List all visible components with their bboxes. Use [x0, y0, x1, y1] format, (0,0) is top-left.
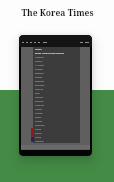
button[interactable]: Index Korea Times Special — [35, 51, 78, 55]
staticText: Columns — [35, 104, 45, 107]
button[interactable]: Editorial — [35, 99, 78, 103]
staticText: N. Korea — [35, 64, 44, 67]
button[interactable]: Foreign — [35, 67, 78, 71]
staticText: Economy — [35, 84, 45, 87]
staticText: Sports — [35, 132, 42, 135]
button[interactable]: Movies — [35, 119, 78, 123]
button[interactable]: Tech — [35, 91, 78, 95]
staticText: Index Korea Times Special — [35, 52, 64, 55]
button[interactable]: Opinion — [35, 95, 78, 99]
button[interactable]: Books — [35, 115, 78, 119]
button[interactable]: Economy — [35, 83, 78, 87]
button[interactable]: The Korea Times — [0, 0, 114, 26]
button[interactable]: Lifestyle — [35, 139, 78, 143]
staticText: The Korea Times — [21, 7, 94, 19]
staticText: World — [35, 136, 42, 139]
button[interactable]: Finance — [35, 87, 78, 91]
staticText: National — [35, 56, 44, 59]
staticText: Defense — [35, 72, 44, 75]
staticText: Home — [35, 48, 42, 51]
button[interactable]: N. Korea — [35, 63, 78, 67]
button[interactable]: Defense — [35, 71, 78, 75]
staticText: Society — [35, 76, 43, 79]
button[interactable]: Columns — [35, 103, 78, 107]
staticText: Entertain — [35, 124, 45, 127]
staticText: Lifestyle — [35, 140, 44, 143]
staticText: Opinion — [35, 96, 44, 99]
button[interactable]: Culture — [35, 111, 78, 115]
staticText: Culture — [35, 112, 43, 115]
staticText: Books — [35, 116, 42, 119]
button[interactable]: Politics — [35, 59, 78, 63]
button[interactable]: National — [35, 55, 78, 59]
staticText: Letters — [35, 108, 43, 111]
staticText: Editorial — [35, 100, 44, 103]
staticText: Foreign — [35, 68, 43, 71]
button[interactable]: Society — [35, 75, 78, 79]
staticText: Politics — [35, 60, 43, 63]
button[interactable]: Letters — [35, 107, 78, 111]
button[interactable]: Business — [35, 79, 78, 83]
staticText: K-pop — [35, 128, 42, 131]
staticText: Finance — [35, 88, 43, 91]
button[interactable]: Entertain — [35, 123, 78, 127]
button[interactable]: K-pop — [35, 127, 78, 131]
button[interactable]: Home — [35, 47, 78, 51]
staticText: Movies — [35, 120, 43, 123]
staticText: Business — [35, 80, 45, 83]
button[interactable]: Sports — [35, 131, 78, 135]
staticText: Tech — [35, 92, 40, 95]
button[interactable]: World — [35, 135, 78, 139]
